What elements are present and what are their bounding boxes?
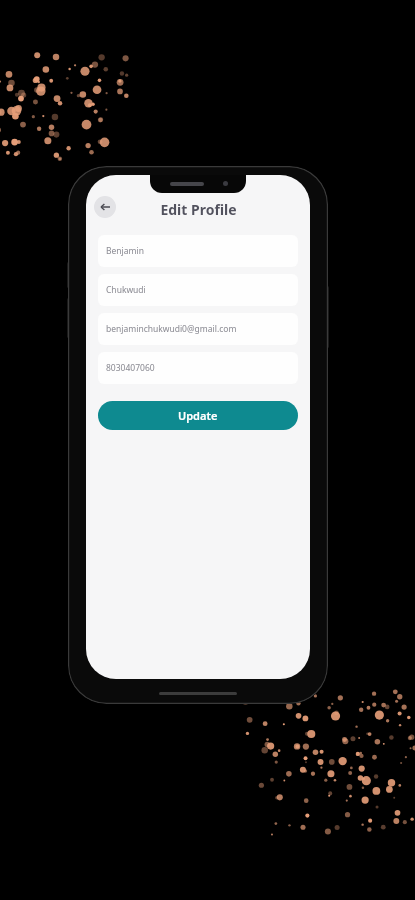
button[interactable]: Update xyxy=(98,401,298,430)
staticText: 8030407060 xyxy=(106,362,155,374)
button[interactable]: 8030407060 xyxy=(98,352,298,384)
button[interactable]: Chukwudi xyxy=(98,274,298,306)
staticText: Chukwudi xyxy=(106,284,146,296)
staticText: Benjamin xyxy=(106,245,144,257)
button[interactable]: benjaminchukwudi0@gmail.com xyxy=(98,313,298,345)
staticText: Update xyxy=(178,408,218,423)
button[interactable]: Back xyxy=(94,196,116,218)
staticText: Edit Profile xyxy=(160,200,237,219)
button[interactable]: Benjamin xyxy=(98,235,298,267)
staticText: benjaminchukwudi0@gmail.com xyxy=(106,323,237,335)
